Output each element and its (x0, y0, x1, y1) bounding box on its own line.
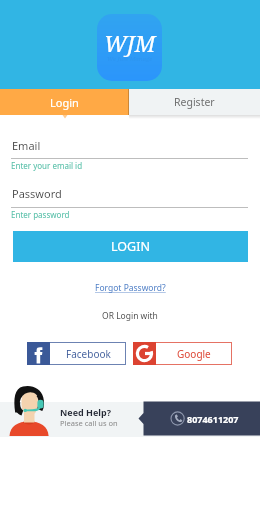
button[interactable]: LOGIN (13, 231, 248, 262)
button[interactable]: Register (129, 89, 260, 115)
button[interactable]: Login (0, 89, 129, 115)
staticText: Enter your email id (11, 160, 83, 171)
staticText: Email (12, 138, 41, 153)
staticText: OR Login with (102, 310, 158, 322)
button[interactable]: Facebook (27, 342, 126, 365)
staticText: Login (50, 95, 79, 110)
staticText: LOGIN (111, 238, 150, 255)
staticText: Facebook (66, 347, 111, 361)
button[interactable]: Google (133, 342, 232, 365)
staticText: 8074611207 (187, 413, 239, 425)
staticText: Register (174, 95, 215, 109)
staticText: Enter password (11, 209, 70, 220)
button[interactable]: Forgot Password? (95, 282, 166, 294)
staticText: Google (177, 347, 211, 361)
staticText: Password (12, 186, 62, 201)
staticText: Need Help? (60, 406, 112, 418)
staticText: We Just Manage (107, 55, 153, 63)
staticText: Please call us on (60, 418, 118, 428)
button[interactable]: Call 8074611207 (139, 401, 260, 436)
staticText: WJM (104, 28, 156, 58)
